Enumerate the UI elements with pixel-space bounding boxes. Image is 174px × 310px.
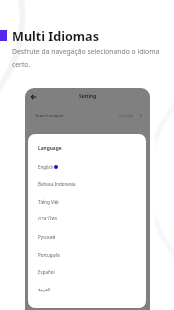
staticText: Русский [38,234,56,240]
staticText: Search engine [35,112,64,118]
staticText: Tiếng Việt [38,199,59,205]
button[interactable]: العربية [38,284,138,295]
staticText: Español [38,269,55,275]
staticText: Desfrute da navegação selecionando o idi… [12,47,162,69]
button[interactable]: Русский [38,231,138,242]
staticText: Multi Idiomas [12,28,99,45]
staticText: Setting [79,93,97,100]
staticText: Language [38,145,62,152]
staticText: ภาษาไทย [38,215,57,222]
staticText: Google [119,112,134,118]
button[interactable]: Search engine [25,109,150,121]
staticText: Português [38,252,60,258]
button[interactable]: Back [28,91,40,103]
button[interactable]: Português [38,249,138,260]
staticText: العربية [38,287,51,292]
button[interactable]: Español [38,266,138,277]
button[interactable]: ภาษาไทย [38,213,138,224]
staticText: English [38,164,54,170]
staticText: Bahasa Indonesia [38,181,76,187]
button[interactable]: English [38,161,138,172]
button[interactable]: Language [38,143,138,154]
button[interactable]: Bahasa Indonesia [38,178,138,189]
button[interactable]: Tiếng Việt [38,196,138,207]
